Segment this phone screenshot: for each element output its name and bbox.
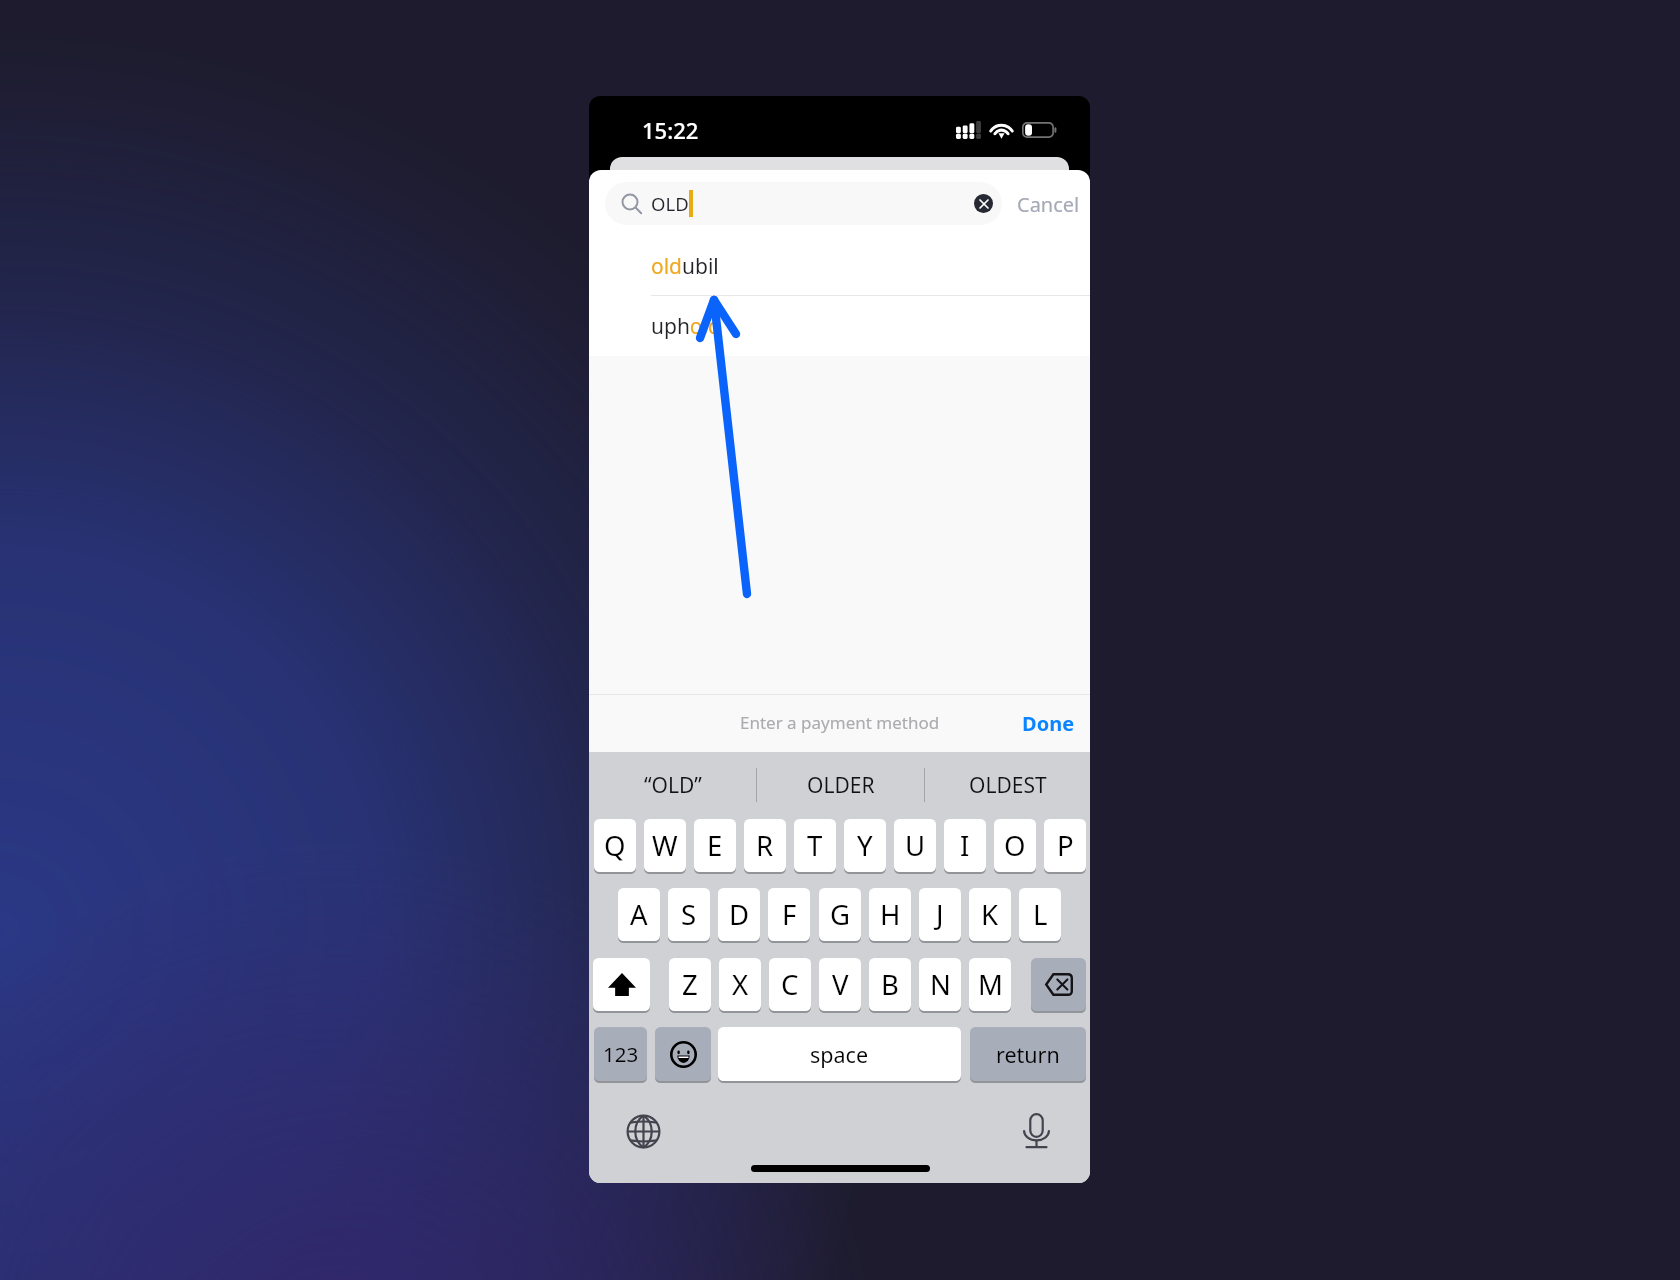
staticText: P (1057, 827, 1074, 864)
button[interactable]: Done (1012, 695, 1084, 752)
button[interactable]: Change keyboard (625, 1113, 661, 1149)
staticText: Enter a payment method (740, 711, 940, 734)
button[interactable]: T (794, 819, 836, 872)
staticText: R (756, 827, 774, 864)
staticText: Y (857, 827, 873, 864)
button[interactable]: O (994, 819, 1036, 872)
staticText: I (960, 827, 970, 864)
button[interactable]: Backspace (1031, 958, 1086, 1011)
staticText: C (781, 966, 799, 1003)
staticText: E (707, 827, 723, 864)
button[interactable]: H (869, 888, 911, 941)
staticText: X (732, 966, 749, 1003)
button[interactable]: OLDER (757, 752, 924, 818)
staticText: 15:22 (642, 115, 699, 141)
staticText: M (978, 966, 1003, 1003)
button[interactable]: P (1044, 819, 1086, 872)
button[interactable]: 123 (594, 1027, 647, 1081)
button[interactable]: M (969, 958, 1011, 1011)
button[interactable]: W (644, 819, 686, 872)
button[interactable]: S (668, 888, 710, 941)
button[interactable]: “OLD” (589, 752, 756, 818)
staticText: OLDER (807, 771, 875, 800)
button[interactable]: Q (594, 819, 636, 872)
button[interactable]: B (869, 958, 911, 1011)
button[interactable]: Z (669, 958, 711, 1011)
staticText: K (981, 896, 999, 933)
button[interactable]: Dictation (1018, 1113, 1054, 1149)
button[interactable]: uphold (589, 296, 1090, 356)
button[interactable]: return (970, 1027, 1086, 1081)
staticText: 123 (603, 1040, 639, 1068)
staticText: Done (1022, 710, 1075, 737)
button[interactable]: A (618, 888, 660, 941)
button[interactable]: Cancel (1013, 184, 1083, 224)
staticText: A (630, 896, 648, 933)
staticText: N (930, 966, 951, 1003)
button[interactable]: OLD (605, 182, 1002, 225)
button[interactable]: I (944, 819, 986, 872)
button[interactable]: oldubil (589, 236, 1090, 296)
staticText: U (905, 827, 926, 864)
button[interactable]: V (819, 958, 861, 1011)
staticText: space (810, 1040, 869, 1069)
staticText: G (830, 896, 851, 933)
staticText: OLDEST (969, 771, 1047, 800)
staticText: OLD (651, 191, 689, 216)
staticText: “OLD” (644, 771, 702, 800)
button[interactable]: U (894, 819, 936, 872)
staticText: L (1033, 896, 1048, 933)
staticText: Z (682, 966, 698, 1003)
button[interactable]: C (769, 958, 811, 1011)
button[interactable]: Clear text (974, 194, 993, 213)
staticText: oldubil (651, 252, 719, 281)
button[interactable]: Shift (593, 958, 650, 1011)
button[interactable]: G (819, 888, 861, 941)
button[interactable]: Emoji (655, 1027, 711, 1081)
staticText: T (807, 827, 823, 864)
staticText: return (996, 1040, 1060, 1069)
staticText: D (729, 896, 750, 933)
button[interactable]: D (718, 888, 760, 941)
button[interactable]: L (1019, 888, 1061, 941)
staticText: B (881, 966, 899, 1003)
staticText: J (936, 896, 944, 933)
button[interactable]: E (694, 819, 736, 872)
button[interactable]: OLDEST (925, 752, 1090, 818)
button[interactable]: space (718, 1027, 961, 1081)
button[interactable]: N (919, 958, 961, 1011)
staticText: V (832, 966, 849, 1003)
staticText: W (652, 827, 678, 864)
staticText: H (880, 896, 901, 933)
button[interactable]: J (919, 888, 961, 941)
staticText: S (681, 896, 697, 933)
button[interactable]: R (744, 819, 786, 872)
button[interactable]: K (969, 888, 1011, 941)
staticText: Cancel (1017, 191, 1080, 218)
staticText: Q (604, 827, 626, 864)
button[interactable]: F (768, 888, 810, 941)
button[interactable]: X (719, 958, 761, 1011)
staticText: uphold (651, 312, 721, 341)
button[interactable]: Y (844, 819, 886, 872)
staticText: O (1004, 827, 1026, 864)
staticText: F (782, 896, 797, 933)
